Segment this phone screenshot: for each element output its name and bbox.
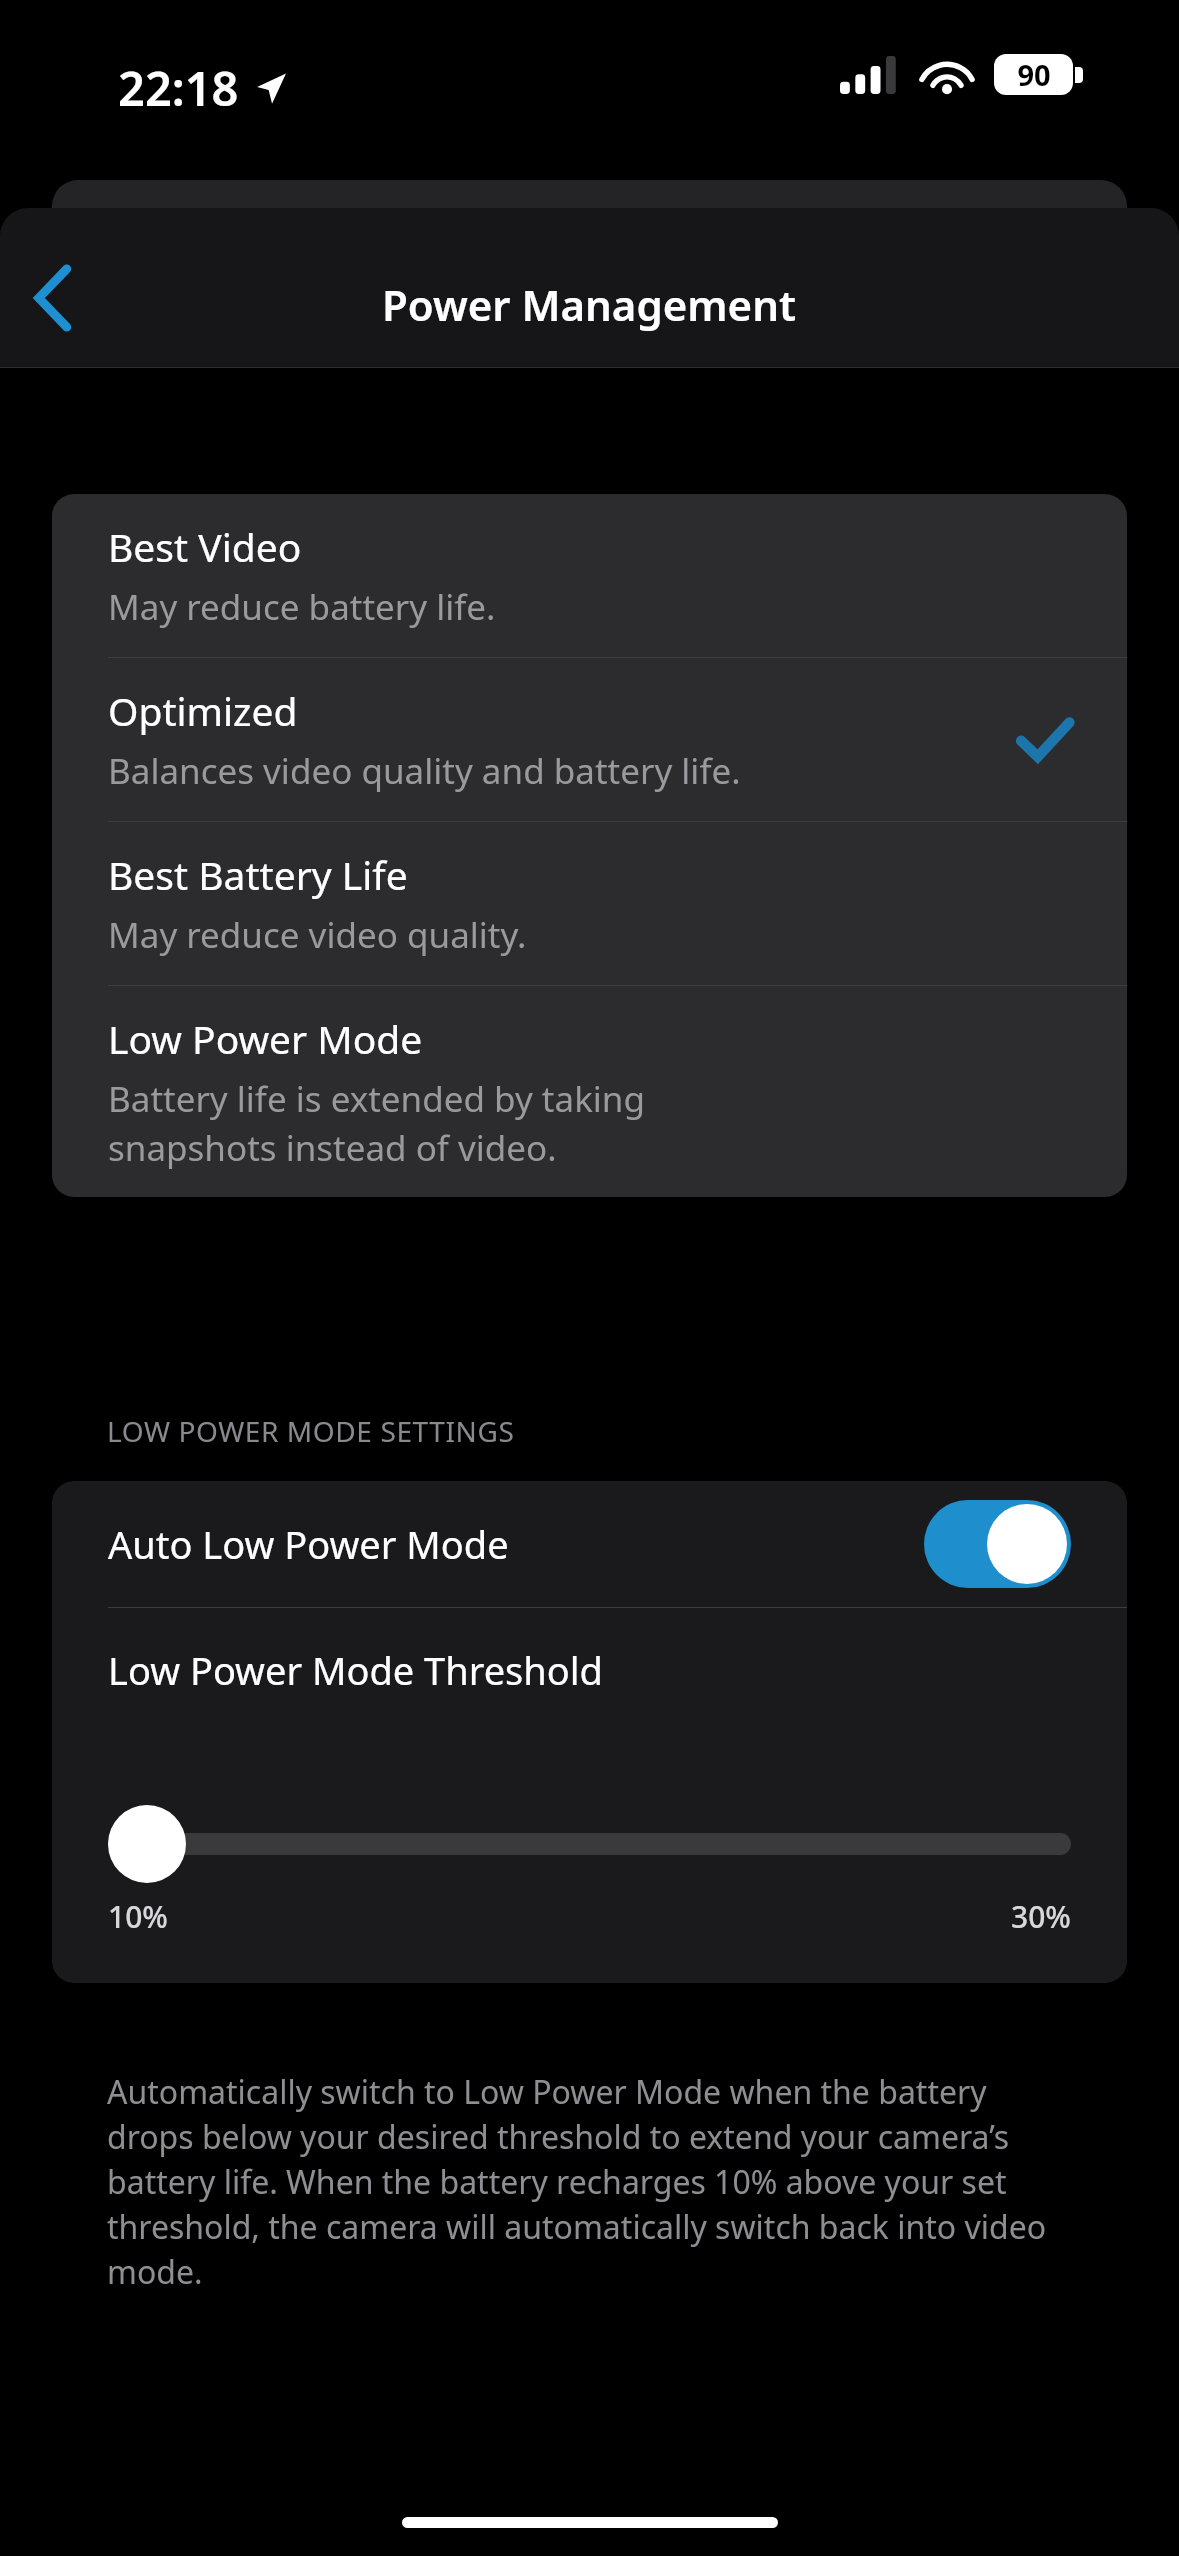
staticText: LOW POWER MODE SETTINGS (107, 1412, 515, 1450)
staticText: Power Management (382, 276, 797, 333)
button[interactable]: Best Battery Life (52, 822, 1127, 985)
staticText: Battery life is extended by taking snaps… (108, 1075, 646, 1171)
staticText: May reduce video quality. (108, 911, 527, 959)
staticText: May reduce battery life. (108, 583, 496, 631)
button[interactable]: Low Power Mode (52, 986, 1127, 1197)
button[interactable]: Back (4, 250, 104, 346)
staticText: Low Power Mode Threshold (108, 1644, 603, 1696)
staticText: Best Battery Life (108, 848, 408, 901)
button[interactable]: Auto Low Power Mode (52, 1481, 1127, 1607)
staticText: Low Power Mode (108, 1012, 423, 1065)
button[interactable]: Best Video (52, 494, 1127, 657)
staticText: Auto Low Power Mode (108, 1518, 924, 1570)
staticText: Best Video (108, 520, 302, 573)
staticText: 30% (1011, 1896, 1071, 1937)
button[interactable]: Low Power Mode Threshold slider (108, 1802, 1071, 1886)
button[interactable]: Auto Low Power Mode toggle, on (924, 1500, 1071, 1588)
staticText: Optimized (108, 684, 298, 737)
staticText: Automatically switch to Low Power Mode w… (107, 2070, 1077, 2294)
staticText: 10% (108, 1896, 168, 1937)
staticText: 90 (1017, 55, 1051, 94)
button[interactable]: Optimized (52, 658, 1127, 821)
staticText: 22:18 (118, 56, 239, 120)
staticText: Balances video quality and battery life. (108, 747, 741, 795)
